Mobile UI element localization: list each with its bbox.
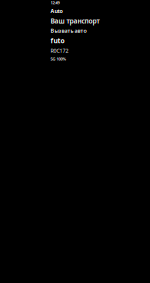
- staticText: Auto: [50, 7, 62, 14]
- staticText: Вызвать авто: [50, 27, 86, 34]
- staticText: 12:49: [50, 0, 59, 5]
- staticText: Ваш транспорт: [50, 16, 99, 25]
- staticText: 5G 100%: [50, 56, 66, 62]
- staticText: R0C172: [50, 47, 68, 54]
- staticText: futo: [50, 36, 64, 45]
